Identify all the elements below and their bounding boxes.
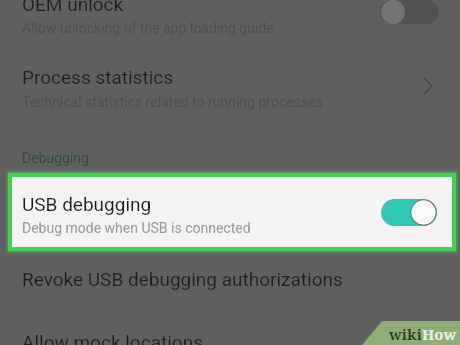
staticText: Allow mock locations [22, 331, 203, 345]
button[interactable]: OEM unlock [0, 0, 460, 48]
staticText: Allow unlocking of the app loading guide [22, 20, 274, 36]
staticText: OEM unlock [22, 0, 124, 15]
button[interactable]: OEM unlock switch, off [380, 0, 439, 24]
staticText: wiki [389, 324, 422, 344]
button[interactable]: USB debugging switch, on [381, 199, 437, 226]
staticText: Revoke USB debugging authorizations [22, 268, 343, 290]
button[interactable]: Revoke USB debugging authorizations [0, 256, 460, 304]
staticText: Debug mode when USB is connected [22, 220, 251, 236]
button[interactable]: Allow mock locations [0, 322, 460, 345]
button[interactable]: Process statistics [0, 54, 460, 116]
staticText: How [422, 324, 457, 344]
staticText: Process statistics [22, 66, 174, 88]
staticText: USB debugging [22, 193, 152, 215]
staticText: Debugging [22, 150, 89, 166]
staticText: Technical statistics related to running … [22, 94, 323, 110]
button[interactable]: USB debugging [12, 177, 452, 247]
